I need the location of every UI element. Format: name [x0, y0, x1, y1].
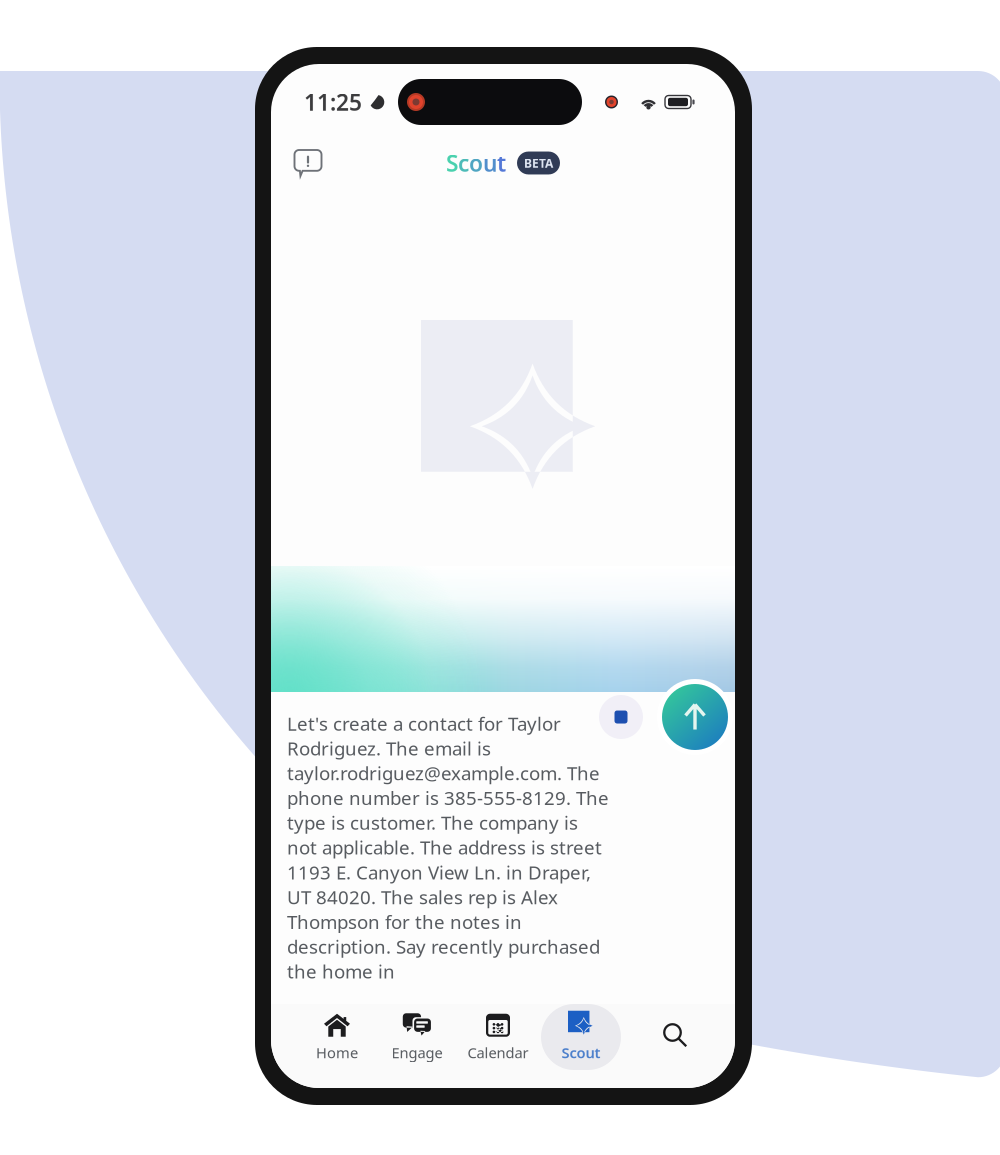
staticText: Home — [316, 1043, 358, 1062]
button[interactable]: Engage — [377, 1004, 457, 1070]
button[interactable]: Send feedback — [286, 142, 330, 184]
staticText: o — [469, 148, 483, 178]
staticText: 11:25 — [304, 87, 362, 117]
button[interactable]: Search — [644, 1004, 706, 1066]
button[interactable]: Stop generating — [595, 677, 647, 757]
staticText: BETA — [524, 155, 553, 171]
staticText: t — [497, 148, 506, 178]
staticText: Engage — [391, 1043, 442, 1062]
staticText: Scout — [561, 1043, 600, 1062]
button[interactable]: Scout — [541, 1004, 621, 1070]
staticText: u — [483, 148, 497, 178]
staticText: Calendar — [467, 1043, 528, 1062]
button[interactable]: Calendar — [458, 1004, 538, 1070]
staticText: Let's create a contact for Taylor Rodrig… — [287, 711, 609, 984]
button[interactable]: Send — [655, 677, 735, 757]
button[interactable]: Home — [297, 1004, 377, 1070]
staticText: c — [458, 148, 469, 178]
staticText: S — [446, 148, 458, 178]
